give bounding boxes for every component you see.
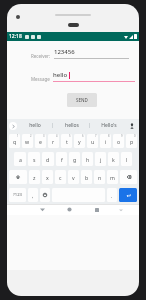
button[interactable]: c [55, 170, 66, 184]
staticText: f [61, 156, 63, 163]
button[interactable]: n [94, 170, 105, 184]
staticText: o [117, 138, 121, 145]
button[interactable]: 2 [22, 134, 33, 148]
staticText: x [46, 174, 49, 181]
staticText: 0 [134, 134, 136, 138]
staticText: 12:18 [9, 33, 22, 40]
staticText: y [78, 138, 81, 145]
staticText: SEND [76, 97, 88, 103]
button[interactable]: 0 [126, 134, 137, 148]
staticText: ?123 [13, 192, 23, 198]
staticText: 5 [69, 134, 71, 138]
button[interactable]: j [95, 152, 106, 166]
staticText: s [33, 156, 36, 163]
button[interactable]: . [107, 188, 117, 202]
staticText: k [112, 156, 115, 163]
staticText: e [39, 138, 42, 145]
button[interactable]: 8 [100, 134, 111, 148]
button[interactable]: m [107, 170, 118, 184]
button[interactable]: ?123 [9, 188, 26, 202]
staticText: z [33, 174, 36, 181]
button[interactable]: 6 [74, 134, 85, 148]
staticText: hello [29, 122, 41, 129]
button[interactable]: , [28, 188, 38, 202]
button[interactable]: Back [29, 204, 56, 215]
button[interactable]: x [42, 170, 53, 184]
button[interactable]: Emoji [40, 188, 50, 202]
staticText: Hello's [101, 122, 117, 129]
staticText: t [66, 138, 68, 145]
staticText: v [72, 174, 75, 181]
staticText: , [32, 192, 34, 199]
staticText: w [25, 138, 30, 145]
staticText: c [59, 174, 62, 181]
button[interactable]: h [82, 152, 93, 166]
staticText: 3 [43, 134, 45, 138]
staticText: m [110, 174, 115, 181]
staticText: 9 [121, 134, 123, 138]
button[interactable]: Home [56, 204, 83, 215]
staticText: p [130, 138, 134, 145]
staticText: 4 [56, 134, 58, 138]
staticText: Message [31, 76, 50, 82]
staticText: j [100, 156, 102, 163]
button[interactable]: Enter [119, 188, 137, 202]
staticText: 7 [95, 134, 97, 138]
staticText: i [105, 138, 107, 145]
button[interactable]: g [69, 152, 80, 166]
button[interactable]: 9 [113, 134, 124, 148]
button[interactable]: a [14, 152, 26, 166]
staticText: 1 [17, 134, 19, 138]
staticText: a [19, 156, 22, 163]
button[interactable]: d [42, 152, 54, 166]
button[interactable]: s [28, 152, 40, 166]
button[interactable]: 3 [35, 134, 46, 148]
button[interactable]: Backspace [120, 170, 137, 184]
button[interactable]: Voice input [127, 121, 136, 130]
button[interactable]: f [56, 152, 67, 166]
staticText: 2 [30, 134, 32, 138]
button[interactable]: Recents [83, 204, 110, 215]
staticText: 123456 [54, 48, 75, 56]
button[interactable]: l [121, 152, 132, 166]
staticText: 6 [82, 134, 84, 138]
button[interactable]: k [108, 152, 119, 166]
staticText: hello [53, 71, 68, 79]
button[interactable]: 5 [61, 134, 72, 148]
staticText: hellos [65, 122, 79, 129]
staticText: g [73, 156, 77, 163]
staticText: 8 [108, 134, 110, 138]
button[interactable]: Hide keyboard [110, 204, 132, 215]
staticText: q [13, 138, 17, 145]
staticText: l [126, 156, 128, 163]
button[interactable]: 1 [9, 134, 20, 148]
staticText: Receiver: [31, 53, 51, 59]
button[interactable]: v [68, 170, 79, 184]
staticText: u [91, 138, 95, 145]
staticText: n [98, 174, 102, 181]
staticText: h [86, 156, 90, 163]
staticText: r [52, 138, 55, 145]
button[interactable]: hellos [53, 119, 90, 132]
button[interactable]: Hello's [90, 119, 127, 132]
button[interactable]: b [81, 170, 92, 184]
staticText: . [111, 192, 113, 199]
button[interactable]: 4 [48, 134, 59, 148]
button[interactable]: SEND [67, 93, 97, 107]
staticText: b [85, 174, 89, 181]
staticText: d [46, 156, 50, 163]
button[interactable]: 7 [87, 134, 98, 148]
button[interactable]: Shift [9, 170, 27, 184]
button[interactable]: Receiver: [31, 48, 129, 59]
button[interactable]: z [29, 170, 40, 184]
button[interactable]: hello [17, 119, 53, 132]
button[interactable]: Message [31, 71, 135, 82]
button[interactable]: Expand toolbar [9, 122, 17, 130]
